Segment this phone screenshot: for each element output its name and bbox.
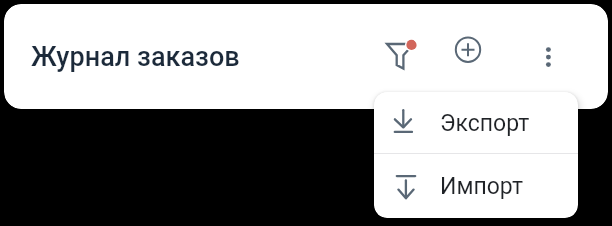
staticText: Импорт xyxy=(440,173,523,200)
staticText: Журнал заказов xyxy=(31,41,240,73)
button[interactable]: Filter xyxy=(373,33,421,81)
button[interactable]: More options xyxy=(524,33,572,81)
button[interactable]: Импорт xyxy=(374,154,578,218)
staticText: Экспорт xyxy=(440,110,530,137)
button[interactable]: Экспорт xyxy=(374,92,578,153)
button[interactable]: Журнал заказов xyxy=(31,41,240,73)
button[interactable]: Add xyxy=(444,26,492,74)
